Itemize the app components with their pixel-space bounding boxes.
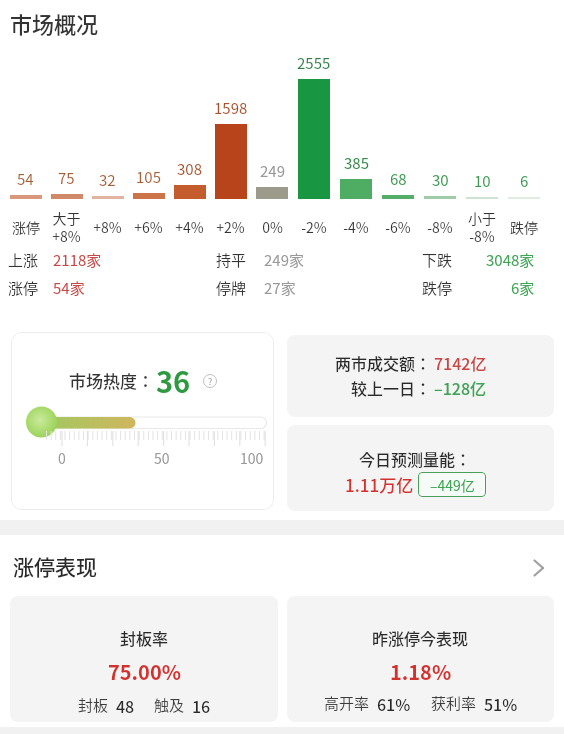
staticText: 48 [116, 694, 135, 716]
staticText: 54 [17, 168, 34, 190]
staticText: 触及 [154, 694, 185, 716]
staticText: 27家 [264, 277, 296, 299]
button[interactable] [11, 332, 274, 510]
staticText: 385 [344, 152, 369, 174]
staticText: 249 [260, 160, 285, 182]
staticText: 大于 +8% [52, 208, 81, 246]
staticText: 6家 [511, 277, 535, 299]
staticText: 7142亿 [434, 351, 487, 374]
staticText: 36 [156, 359, 191, 401]
button[interactable] [0, 545, 564, 587]
staticText: +2% [216, 217, 245, 237]
staticText: 1598 [214, 97, 248, 119]
staticText: 1.18% [390, 657, 452, 686]
staticText: 10 [474, 170, 491, 192]
staticText: –449亿 [430, 475, 475, 495]
staticText: -2% [301, 217, 327, 237]
staticText: 今日预测量能： [359, 447, 472, 470]
staticText: -4% [343, 217, 369, 237]
staticText: 2118家 [53, 249, 102, 271]
staticText: 下跌 [422, 249, 453, 271]
staticText: 50 [154, 448, 170, 468]
staticText: 小于 -8% [468, 208, 496, 246]
staticText: 昨涨停今表现 [372, 626, 469, 649]
staticText: 51% [484, 692, 518, 714]
staticText: 0% [262, 217, 283, 237]
staticText: 跌停 [422, 277, 453, 299]
staticText: 249家 [264, 249, 304, 271]
staticText: –128亿 [434, 376, 487, 399]
staticText: +8% [93, 217, 122, 237]
staticText: 停牌 [216, 277, 247, 299]
staticText: 54家 [53, 277, 85, 299]
staticText: 75.00% [108, 657, 181, 686]
staticText: 市场概况 [10, 7, 99, 39]
staticText: 32 [99, 169, 116, 191]
staticText: ? [208, 375, 213, 388]
staticText: 获利率 [431, 692, 477, 714]
staticText: 封板率 [120, 626, 169, 649]
staticText: 6 [520, 170, 529, 192]
staticText: 3048家 [486, 249, 535, 271]
staticText: 100 [240, 448, 264, 468]
staticText: 68 [390, 168, 407, 190]
staticText: 1.11万亿 [345, 472, 414, 497]
staticText: 75 [58, 167, 75, 189]
staticText: -6% [385, 217, 411, 237]
staticText: 61% [377, 692, 411, 714]
staticText: 上涨 [8, 249, 39, 271]
staticText: 涨停 [8, 277, 39, 299]
button[interactable] [287, 596, 554, 722]
button[interactable] [287, 335, 554, 417]
staticText: 2555 [297, 52, 331, 74]
button[interactable] [287, 425, 554, 511]
staticText: 105 [136, 166, 161, 188]
staticText: 0 [58, 448, 66, 468]
staticText: +4% [175, 217, 204, 237]
staticText: +6% [134, 217, 163, 237]
staticText: 封板 [78, 694, 109, 716]
staticText: 市场热度： [69, 368, 154, 393]
staticText: 涨停 [12, 217, 40, 237]
staticText: 16 [192, 694, 211, 716]
staticText: 高开率 [324, 692, 370, 714]
staticText: 较上一日： [351, 376, 432, 399]
button[interactable] [10, 596, 278, 722]
staticText: 308 [177, 158, 202, 180]
staticText: 跌停 [510, 217, 538, 237]
staticText: 两市成交额： [335, 351, 432, 374]
staticText: -8% [427, 217, 453, 237]
staticText: 30 [432, 169, 449, 191]
staticText: 持平 [216, 249, 247, 271]
staticText: 涨停表现 [13, 551, 97, 581]
